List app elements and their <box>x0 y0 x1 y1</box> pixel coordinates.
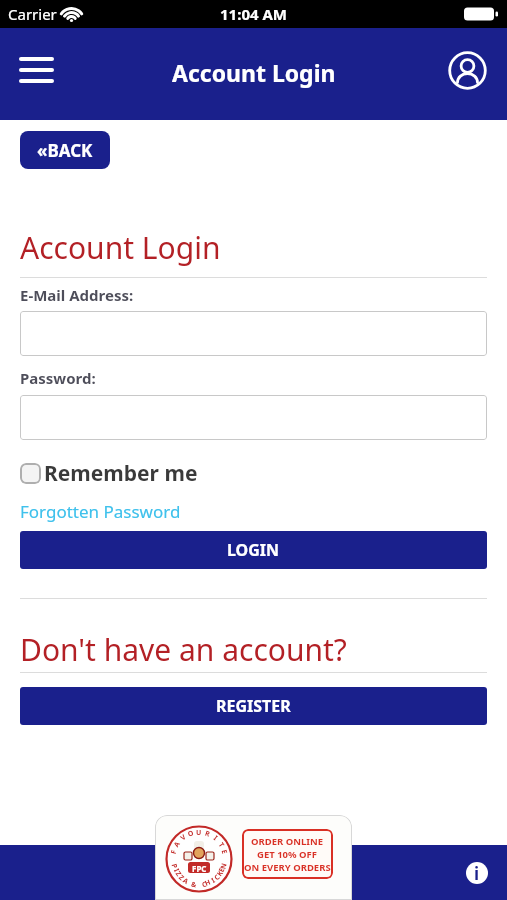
button[interactable]: i <box>466 862 488 884</box>
staticText: C <box>201 879 208 890</box>
staticText: H <box>203 877 213 889</box>
staticText: FPC <box>192 863 207 874</box>
staticText: I <box>209 876 217 886</box>
button[interactable]: Remember me <box>20 459 198 488</box>
button[interactable] <box>20 395 487 440</box>
staticText: N <box>218 862 230 870</box>
staticText <box>187 878 193 888</box>
staticText: Carrier <box>8 4 57 24</box>
staticText: Z <box>173 869 184 879</box>
staticText: Don't have an account? <box>20 629 347 670</box>
staticText: REGISTER <box>216 695 291 717</box>
staticText: U <box>196 828 202 838</box>
staticText: K <box>215 869 226 879</box>
button[interactable]: LOGIN <box>20 531 487 569</box>
button[interactable] <box>20 311 487 356</box>
staticText: E-Mail Address: <box>20 285 134 305</box>
staticText: A <box>172 840 183 849</box>
staticText: «BACK <box>37 139 93 162</box>
staticText: ON EVERY ORDERS <box>244 861 331 874</box>
staticText: V <box>178 832 188 843</box>
staticText: A <box>181 876 190 887</box>
button[interactable]: F <box>155 815 352 900</box>
staticText: F <box>169 849 179 855</box>
staticText: C <box>212 872 223 883</box>
staticText: GET 10% OFF <box>257 848 318 861</box>
staticText: ORDER ONLINE <box>251 835 324 848</box>
staticText: E <box>219 849 229 855</box>
staticText: P <box>169 863 180 870</box>
staticText: O <box>187 828 195 840</box>
staticText: E <box>217 866 227 874</box>
button[interactable] <box>19 57 54 83</box>
button[interactable]: Forgotten Password <box>20 500 181 523</box>
staticText: LOGIN <box>227 539 280 561</box>
staticText: Remember me <box>44 459 198 488</box>
staticText: T <box>216 841 227 850</box>
button[interactable]: REGISTER <box>20 687 487 725</box>
staticText: Z <box>176 873 187 884</box>
staticText: Account Login <box>172 57 336 88</box>
staticText: i <box>474 862 480 884</box>
staticText: Password: <box>20 368 96 388</box>
button[interactable]: «BACK <box>20 131 110 169</box>
staticText: & <box>190 879 198 890</box>
staticText: 11:04 AM <box>220 4 287 24</box>
button[interactable] <box>448 51 487 90</box>
staticText: R <box>203 829 211 840</box>
staticText: I <box>171 867 181 874</box>
staticText: I <box>211 833 220 843</box>
staticText: Account Login <box>20 227 221 268</box>
